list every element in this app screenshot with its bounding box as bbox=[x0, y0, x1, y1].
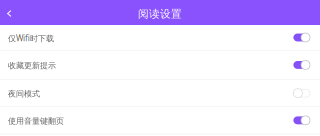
staticText: 夜间模式 bbox=[8, 89, 40, 99]
button[interactable]: 夜间模式 bbox=[0, 80, 320, 107]
button[interactable]: 收藏更新提示 bbox=[0, 51, 320, 80]
staticText: 使用音量键翻页 bbox=[8, 116, 64, 126]
staticText: 仅Wifi时下载 bbox=[8, 33, 54, 43]
button[interactable]: Back bbox=[0, 0, 18, 25]
button[interactable]: 仅Wifi时下载 bbox=[0, 25, 320, 51]
button[interactable]: 使用音量键翻页 bbox=[0, 107, 320, 134]
staticText: 收藏更新提示 bbox=[8, 61, 56, 70]
staticText: 阅读设置 bbox=[138, 7, 182, 20]
